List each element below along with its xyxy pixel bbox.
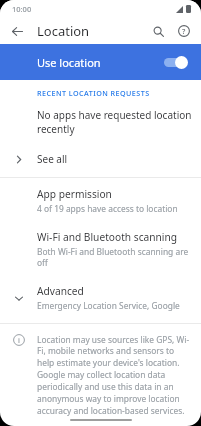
staticText: Use location — [37, 55, 163, 70]
staticText: Wi-Fi and Bluetooth scanning — [37, 230, 178, 244]
button[interactable]: Help — [173, 20, 195, 42]
button[interactable]: App permission — [0, 178, 201, 217]
button[interactable]: Use location — [0, 44, 201, 80]
button[interactable]: Wi-Fi and Bluetooth scanning — [0, 217, 201, 271]
staticText: Both Wi-Fi and Bluetooth scanning are of… — [37, 246, 191, 268]
staticText: 4 of 19 apps have access to location — [37, 203, 178, 214]
button[interactable]: Advanced — [0, 271, 201, 314]
staticText: ? — [182, 26, 186, 36]
staticText: Advanced — [37, 284, 84, 298]
staticText: i — [18, 335, 20, 345]
button[interactable]: See all — [0, 148, 201, 170]
staticText: No apps have requested location recently — [37, 108, 201, 136]
button[interactable]: Search — [147, 20, 169, 42]
staticText: Location — [37, 22, 90, 40]
staticText: RECENT LOCATION REQUESTS — [37, 88, 150, 98]
staticText: 10:00 — [12, 4, 32, 14]
staticText: Emergency Location Service, Google Locat… — [37, 300, 191, 311]
staticText: See all — [37, 152, 68, 166]
button[interactable]: Back — [6, 20, 28, 42]
staticText: Location may use sources like GPS, Wi-Fi… — [37, 334, 191, 416]
staticText: App permission — [37, 187, 112, 201]
